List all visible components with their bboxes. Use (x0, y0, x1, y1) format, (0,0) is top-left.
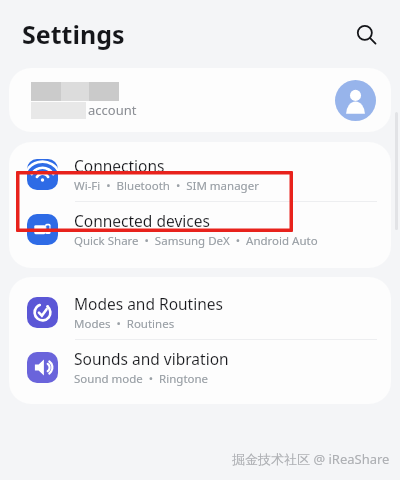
staticText: Sounds and vibration (74, 348, 229, 369)
button[interactable]: Account avatar (335, 80, 376, 121)
button[interactable]: Connected devices (9, 202, 391, 256)
staticText: account (88, 101, 137, 119)
staticText: Settings (22, 17, 125, 51)
button[interactable]: Sounds and vibration (9, 340, 391, 394)
button[interactable]: account (9, 68, 391, 132)
button[interactable]: Modes and Routines (9, 285, 391, 339)
staticText: Wi-Fi • Bluetooth • SIM manager (74, 178, 259, 194)
staticText: Connected devices (74, 210, 210, 231)
button[interactable]: Search (346, 14, 386, 54)
staticText: Quick Share • Samsung DeX • Android Auto (74, 233, 318, 249)
staticText: Connections (74, 155, 165, 176)
staticText: Modes • Routines (74, 316, 175, 332)
staticText: 掘金技术社区 @ iReaShare (232, 450, 390, 468)
staticText: Modes and Routines (74, 293, 223, 314)
staticText: Sound mode • Ringtone (74, 371, 209, 387)
button[interactable]: Connections (9, 147, 391, 201)
